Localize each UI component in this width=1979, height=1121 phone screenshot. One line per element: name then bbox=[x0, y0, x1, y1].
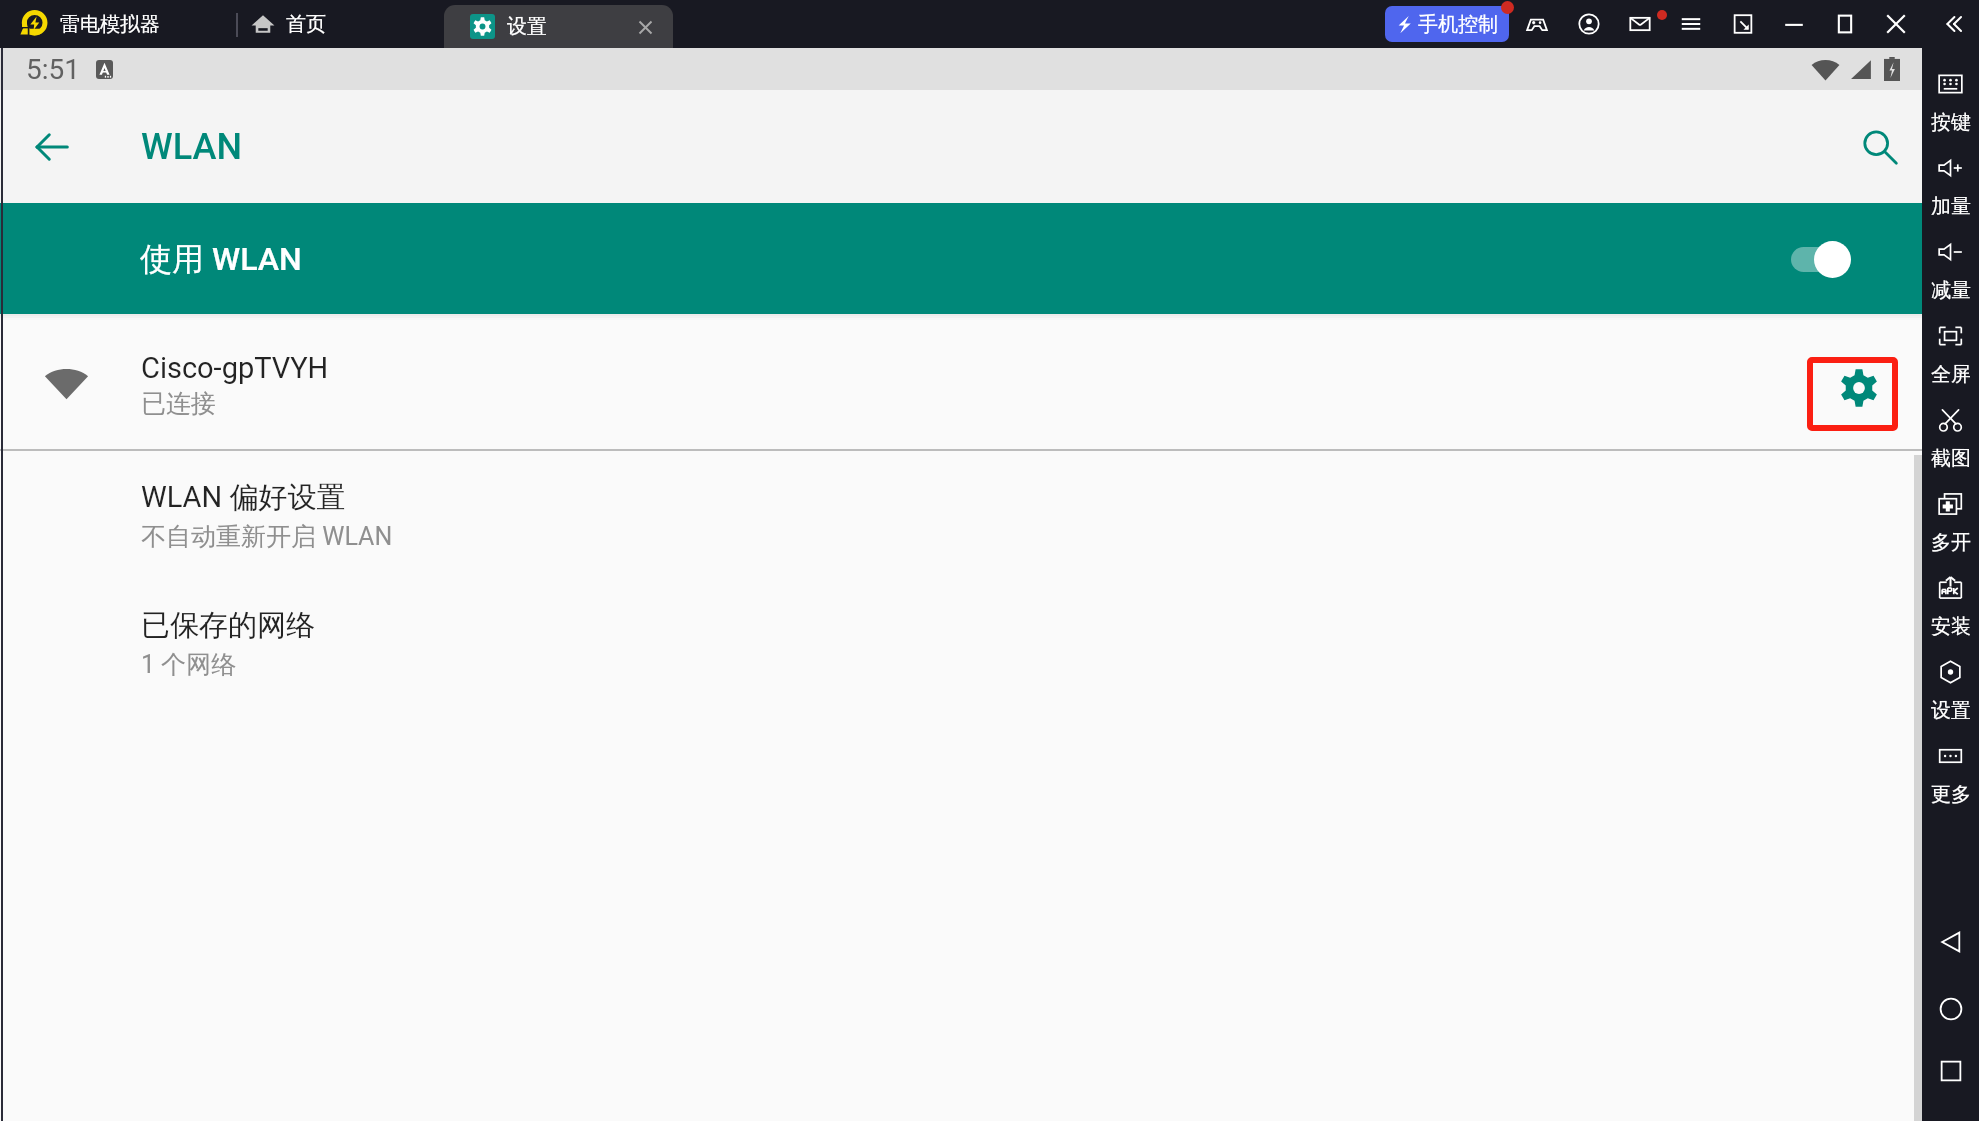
button[interactable]: 更多 bbox=[1922, 744, 1979, 828]
staticText: 已保存的网络 bbox=[141, 607, 315, 644]
button[interactable]: Search bbox=[1848, 115, 1912, 179]
button[interactable]: Close bbox=[1879, 7, 1913, 41]
button[interactable]: Close tab bbox=[631, 13, 659, 41]
button[interactable]: Collapse bbox=[1937, 7, 1971, 41]
button[interactable]: 减量 bbox=[1922, 240, 1979, 324]
staticText: 已连接 bbox=[141, 388, 216, 419]
staticText: 使用 WLAN bbox=[140, 239, 302, 279]
staticText: 截图 bbox=[1931, 446, 1971, 471]
button[interactable]: Back bbox=[1933, 924, 1969, 960]
button[interactable]: Network settings bbox=[1807, 357, 1898, 431]
button[interactable]: Minimize bbox=[1777, 7, 1811, 41]
button[interactable]: 已保存的网络 bbox=[0, 579, 1922, 707]
staticText: 雷电模拟器 bbox=[60, 12, 160, 37]
button[interactable]: WLAN 偏好设置 bbox=[0, 451, 1922, 579]
button[interactable]: Back bbox=[22, 117, 81, 176]
staticText: 手机控制 bbox=[1418, 12, 1498, 37]
button[interactable]: 多开 bbox=[1922, 492, 1979, 576]
staticText: 安装 bbox=[1931, 614, 1971, 639]
button[interactable]: 加量 bbox=[1922, 156, 1979, 240]
button[interactable]: 设置 bbox=[1922, 660, 1979, 744]
button[interactable]: 截图 bbox=[1922, 408, 1979, 492]
staticText: 不自动重新开启 WLAN bbox=[141, 521, 393, 552]
button[interactable]: 安装 bbox=[1922, 576, 1979, 660]
staticText: 更多 bbox=[1931, 782, 1971, 807]
button[interactable]: 设置 bbox=[444, 5, 673, 48]
staticText: 设置 bbox=[1931, 698, 1971, 723]
button[interactable]: 全屏 bbox=[1922, 324, 1979, 408]
staticText: Cisco-gpTVYH bbox=[141, 351, 329, 385]
staticText: WLAN 偏好设置 bbox=[141, 479, 346, 516]
staticText: 5:51 bbox=[26, 53, 80, 86]
button[interactable]: Menu bbox=[1674, 7, 1708, 41]
staticText: 首页 bbox=[286, 12, 326, 37]
staticText: 按键 bbox=[1931, 110, 1971, 135]
button[interactable]: Mail bbox=[1623, 7, 1657, 41]
button[interactable]: Game bbox=[1520, 7, 1554, 41]
staticText: 多开 bbox=[1931, 530, 1971, 555]
button[interactable]: 手机控制 bbox=[1385, 6, 1509, 42]
button[interactable]: 使用 WLAN bbox=[0, 203, 1922, 314]
button[interactable]: Account bbox=[1572, 7, 1606, 41]
button[interactable]: Maximize bbox=[1828, 7, 1862, 41]
button[interactable]: Cisco-gpTVYH bbox=[0, 320, 1922, 449]
staticText: 全屏 bbox=[1931, 362, 1971, 387]
button[interactable]: Resize bbox=[1726, 7, 1760, 41]
staticText: 设置 bbox=[507, 14, 547, 39]
staticText: 减量 bbox=[1931, 278, 1971, 303]
staticText: 加量 bbox=[1931, 194, 1971, 219]
button[interactable]: 首页 bbox=[250, 0, 326, 48]
staticText: WLAN bbox=[141, 126, 243, 168]
button[interactable]: Home bbox=[1933, 991, 1969, 1027]
staticText: 1 个网络 bbox=[141, 649, 237, 680]
button[interactable]: 按键 bbox=[1922, 72, 1979, 156]
button[interactable]: Recents bbox=[1933, 1053, 1969, 1089]
